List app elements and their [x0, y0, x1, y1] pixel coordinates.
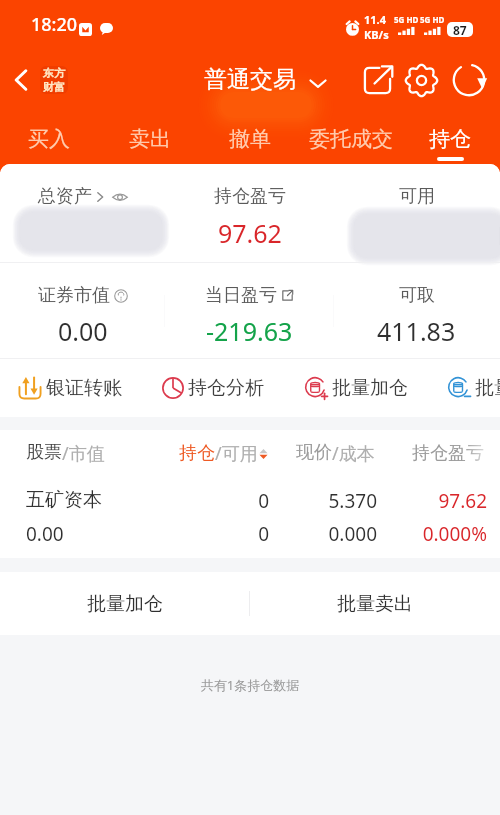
staticText: 5.370: [177, 488, 377, 514]
staticText: 五矿资本: [26, 488, 102, 512]
staticText: 0.00: [26, 521, 64, 547]
staticText: 撤单: [229, 126, 271, 152]
staticText: 共有1条持仓数据: [0, 676, 500, 694]
staticText: 411.83: [377, 314, 456, 348]
staticText: -219.63: [206, 314, 293, 348]
staticText: 0.000: [177, 521, 377, 547]
staticText: 0.000%: [287, 521, 487, 547]
staticText: 批量减仓: [475, 376, 500, 400]
staticText: 18:20: [31, 12, 78, 37]
staticText: 可用: [399, 185, 435, 208]
staticText: 批量加仓: [87, 592, 163, 616]
staticText: 0: [69, 521, 269, 547]
staticText: 总资产: [38, 185, 92, 208]
button[interactable]: Switch account: [307, 72, 329, 94]
staticText: 委托成交: [309, 126, 393, 152]
staticText: KB/s: [364, 27, 389, 42]
button[interactable]: 五矿资本: [0, 476, 500, 558]
staticText: 11.4: [364, 12, 386, 27]
button[interactable]: 证券市值: [0, 284, 166, 348]
staticText: 批量加仓: [332, 376, 408, 400]
button[interactable]: Back: [4, 63, 38, 97]
button[interactable]: 普通交易: [150, 65, 350, 94]
button[interactable]: 批量加仓: [305, 376, 408, 400]
staticText: 财富: [43, 80, 65, 94]
staticText: /成本: [332, 441, 375, 466]
button[interactable]: 总资产: [38, 185, 128, 208]
button[interactable]: 卖出: [114, 108, 186, 172]
button[interactable]: 可取: [333, 284, 500, 348]
staticText: 持仓分析: [188, 376, 264, 400]
staticText: 0.00: [58, 314, 108, 348]
staticText: 87: [453, 22, 467, 37]
staticText: 持仓盈亏: [412, 442, 484, 465]
staticText: 买入: [28, 126, 70, 152]
staticText: 持仓: [179, 442, 215, 465]
staticText: 现价: [296, 441, 332, 464]
button[interactable]: 当日盈亏: [166, 284, 333, 348]
staticText: 批量卖出: [337, 592, 413, 616]
staticText: /市值: [62, 441, 105, 466]
button[interactable]: 银证转账: [18, 376, 122, 400]
staticText: 持仓: [429, 126, 471, 152]
staticText: 97.62: [218, 216, 282, 250]
staticText: 卖出: [129, 126, 171, 152]
staticText: 0: [69, 488, 269, 514]
button[interactable]: 批量卖出: [250, 572, 500, 635]
staticText: 东方: [43, 66, 65, 80]
button[interactable]: 持仓: [179, 441, 268, 466]
staticText: 97.62: [287, 488, 487, 514]
staticText: 银证转账: [46, 376, 122, 400]
button[interactable]: 持仓: [414, 108, 486, 172]
button[interactable]: 批量加仓: [0, 572, 249, 635]
staticText: /可用: [215, 441, 258, 466]
staticText: 可取: [399, 284, 435, 307]
button[interactable]: 批量减仓: [448, 376, 500, 400]
staticText: 普通交易: [204, 65, 296, 94]
staticText: 当日盈亏: [205, 284, 277, 307]
button[interactable]: 委托成交: [299, 108, 403, 172]
button[interactable]: Settings: [401, 60, 441, 100]
staticText: 持仓盈亏: [214, 185, 286, 208]
staticText: 证券市值: [38, 284, 110, 307]
button[interactable]: Share: [357, 60, 397, 100]
button[interactable]: 持仓分析: [162, 376, 264, 400]
button[interactable]: 东方财富: [40, 66, 68, 94]
staticText: 5G HD: [420, 14, 445, 25]
button[interactable]: 撤单: [214, 108, 286, 172]
staticText: 5G HD: [394, 14, 419, 25]
button[interactable]: 买入: [13, 108, 85, 172]
button[interactable]: Refresh: [449, 60, 489, 100]
staticText: 股票: [26, 441, 62, 464]
